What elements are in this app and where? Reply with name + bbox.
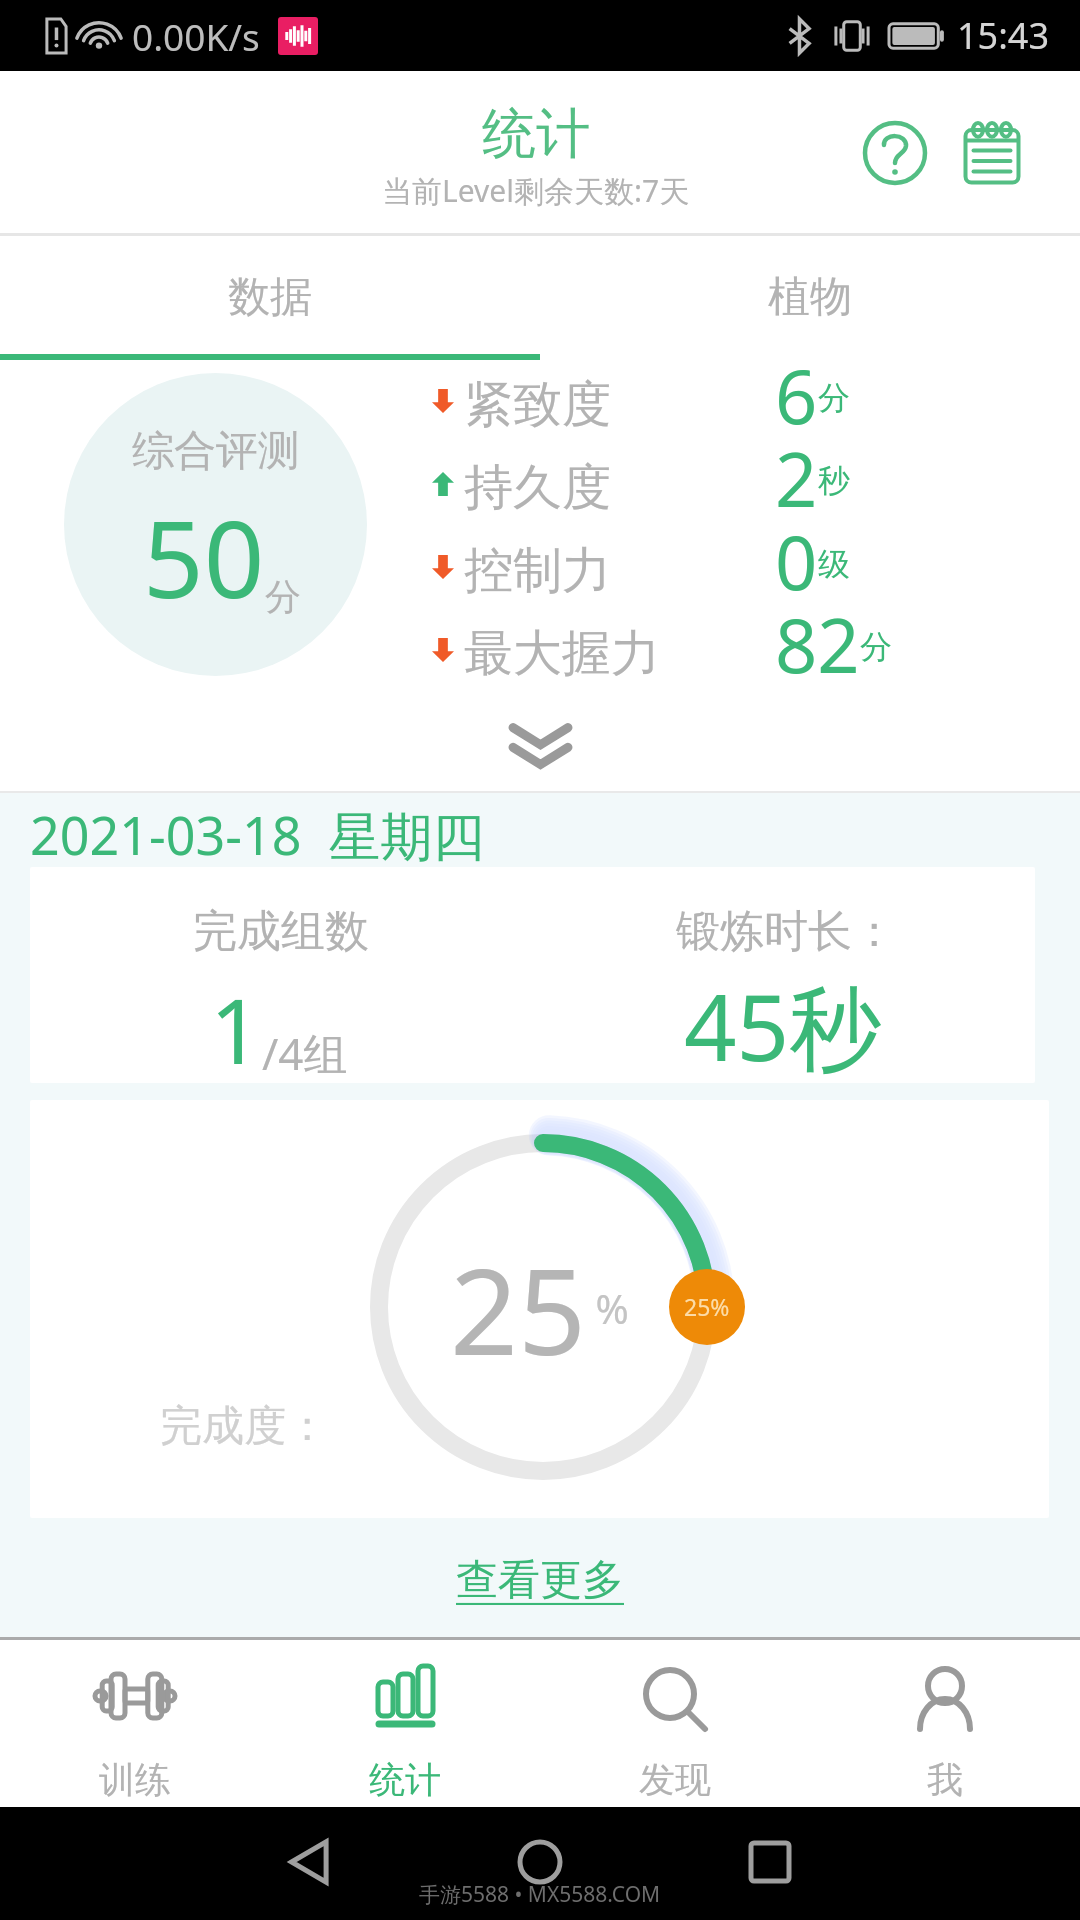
staticText: 45秒 <box>684 963 882 1083</box>
staticText: 分 <box>265 574 301 619</box>
staticText: 25% <box>684 1291 730 1322</box>
staticText: 综合评测 <box>132 425 300 478</box>
staticText: 25 <box>450 1228 587 1390</box>
staticText: 6 <box>775 345 818 428</box>
staticText: 最大握力 <box>464 623 660 685</box>
staticText: 0.00K/s <box>132 11 260 61</box>
staticText: 0 <box>775 511 818 594</box>
staticText: 15:43 <box>957 11 1050 60</box>
staticText: 2021-03-18 星期四 <box>30 799 485 870</box>
staticText: 50 <box>143 485 265 629</box>
button[interactable]: 我 <box>810 1640 1080 1807</box>
staticText: 分 <box>818 378 850 418</box>
staticText: 分 <box>860 627 892 667</box>
staticText: 数据 <box>228 271 312 324</box>
staticText: 发现 <box>639 1757 711 1802</box>
button[interactable]: Expand <box>475 706 605 786</box>
staticText: 当前Level剩余天数:7天 <box>382 170 690 211</box>
button[interactable]: 数据 <box>0 236 540 354</box>
staticText: 1 <box>210 968 262 1083</box>
staticText: 训练 <box>99 1757 171 1802</box>
staticText: 我 <box>927 1757 963 1802</box>
staticText: 完成组数 <box>193 904 369 959</box>
staticText: 统计 <box>369 1757 441 1802</box>
staticText: 持久度 <box>464 457 611 519</box>
button[interactable]: 统计 <box>270 1640 540 1807</box>
staticText: 完成度： <box>160 1400 328 1453</box>
staticText: 植物 <box>768 271 852 324</box>
staticText: 2 <box>775 428 818 511</box>
button[interactable]: 发现 <box>540 1640 810 1807</box>
button[interactable]: Help <box>856 114 934 192</box>
staticText: /4组 <box>262 1023 348 1083</box>
button[interactable]: Records <box>961 122 1023 184</box>
staticText: 锻炼时长： <box>676 904 896 959</box>
staticText: 紧致度 <box>464 374 611 436</box>
button[interactable]: 训练 <box>0 1640 270 1807</box>
staticText: 查看更多 <box>456 1554 624 1607</box>
staticText: 秒 <box>818 461 850 501</box>
staticText: 统计 <box>482 100 590 168</box>
button[interactable]: 植物 <box>540 236 1080 354</box>
staticText: 控制力 <box>464 540 611 602</box>
button[interactable]: 查看更多 <box>436 1546 644 1615</box>
staticText: % <box>585 1281 629 1335</box>
staticText: 82 <box>775 594 860 677</box>
staticText: 级 <box>818 544 850 584</box>
staticText: 手游5588 • MX5588.COM <box>419 1880 661 1909</box>
